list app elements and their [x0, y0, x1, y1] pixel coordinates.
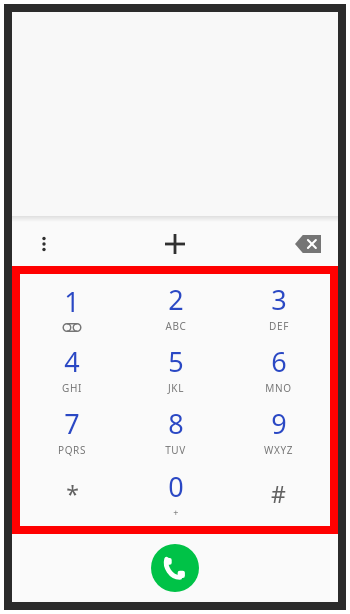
button[interactable]: 0: [124, 464, 227, 522]
button[interactable]: *: [20, 464, 124, 522]
staticText: GHI: [62, 381, 82, 395]
staticText: WXYZ: [264, 443, 293, 457]
staticText: 6: [271, 343, 287, 380]
staticText: 9: [271, 405, 287, 442]
button[interactable]: #: [227, 464, 330, 522]
button[interactable]: 6: [227, 340, 330, 398]
staticText: +: [173, 506, 179, 518]
button[interactable]: Call: [151, 544, 199, 592]
staticText: 3: [271, 281, 287, 318]
staticText: JKL: [168, 381, 184, 395]
staticText: 1: [64, 283, 80, 320]
staticText: ABC: [165, 319, 187, 333]
staticText: 7: [64, 405, 80, 442]
button[interactable]: Add contact: [153, 222, 197, 266]
button[interactable]: 8: [124, 402, 227, 460]
button[interactable]: Backspace: [288, 224, 328, 264]
button[interactable]: 3: [227, 278, 330, 336]
button[interactable]: 5: [124, 340, 227, 398]
button[interactable]: 4: [20, 340, 124, 398]
button[interactable]: 1: [20, 278, 124, 336]
staticText: #: [271, 478, 286, 509]
staticText: TUV: [165, 443, 186, 457]
button[interactable]: 9: [227, 402, 330, 460]
button[interactable]: More options: [24, 224, 64, 264]
button[interactable]: 2: [124, 278, 227, 336]
staticText: DEF: [269, 319, 289, 333]
staticText: 0: [168, 468, 184, 505]
staticText: 8: [168, 405, 184, 442]
staticText: *: [66, 478, 79, 509]
staticText: 2: [168, 281, 184, 318]
staticText: MNO: [265, 381, 292, 395]
staticText: 4: [64, 343, 80, 380]
button[interactable]: 7: [20, 402, 124, 460]
staticText: 5: [168, 343, 184, 380]
staticText: PQRS: [58, 443, 86, 457]
